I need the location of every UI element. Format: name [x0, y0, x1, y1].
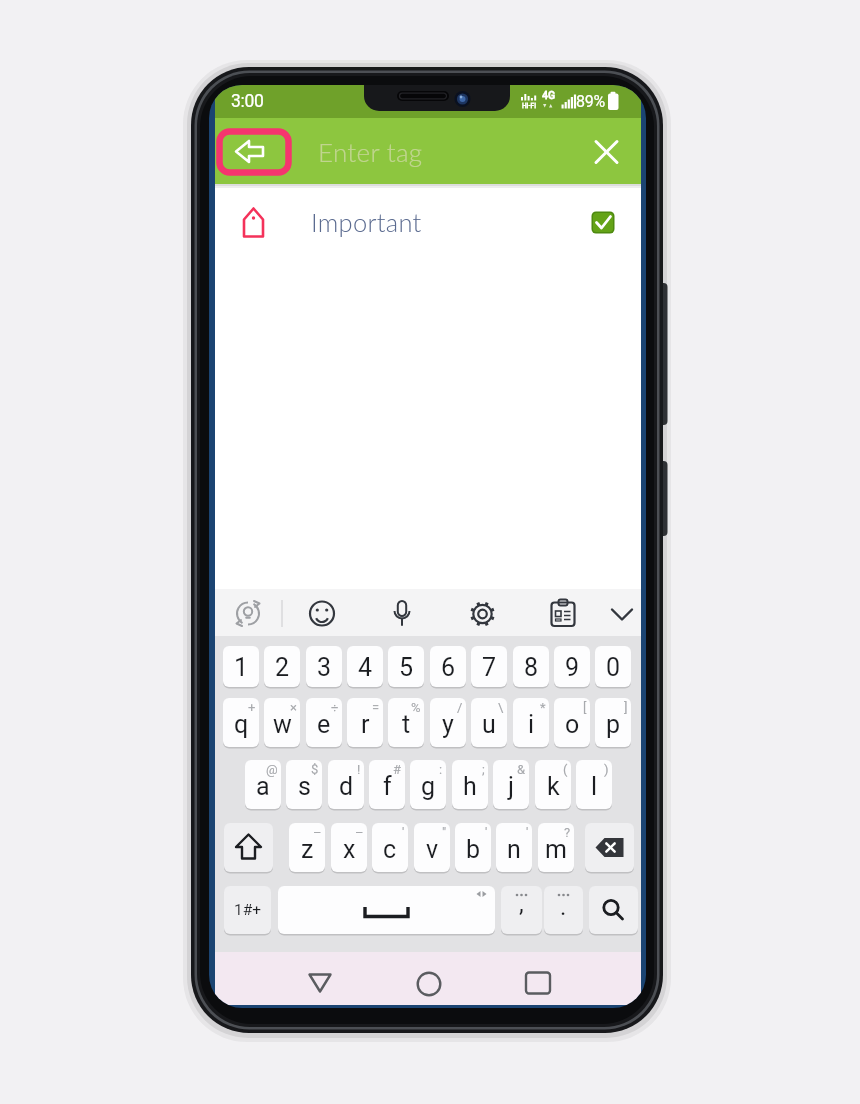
staticText: ×: [290, 700, 297, 715]
button[interactable]: i: [513, 698, 549, 747]
button[interactable]: y: [430, 698, 466, 747]
button[interactable]: c: [372, 823, 408, 872]
button[interactable]: r: [347, 698, 383, 747]
staticText: y: [442, 710, 454, 739]
button[interactable]: [219, 131, 289, 173]
button[interactable]: ,: [501, 886, 542, 934]
button[interactable]: [224, 823, 273, 872]
button[interactable]: g: [410, 760, 446, 809]
staticText: d: [339, 772, 354, 801]
staticText: –: [355, 825, 364, 840]
button[interactable]: 7: [471, 646, 507, 687]
button[interactable]: 5: [388, 646, 424, 687]
staticText: i: [528, 710, 535, 739]
button[interactable]: [382, 594, 422, 634]
button[interactable]: o: [554, 698, 590, 747]
staticText: b: [466, 835, 481, 864]
button[interactable]: x: [331, 823, 367, 872]
staticText: HI-FI: [522, 102, 536, 110]
staticText: m: [545, 835, 567, 864]
staticText: q: [234, 710, 249, 739]
button[interactable]: 1#+: [224, 886, 271, 934]
button[interactable]: [290, 958, 350, 1004]
staticText: #: [393, 762, 402, 777]
button[interactable]: [585, 823, 634, 872]
button[interactable]: e: [306, 698, 342, 747]
button[interactable]: d: [328, 760, 364, 809]
staticText: =: [372, 700, 380, 715]
staticText: 4G: [542, 89, 556, 101]
button[interactable]: p: [595, 698, 631, 747]
button[interactable]: m: [538, 823, 574, 872]
staticText: [: [583, 700, 587, 715]
staticText: f: [383, 772, 392, 801]
staticText: ;: [482, 762, 485, 777]
staticText: n: [507, 835, 521, 864]
button[interactable]: 4: [347, 646, 383, 687]
button[interactable]: w: [264, 698, 300, 747]
button[interactable]: [462, 594, 502, 634]
staticText: j: [508, 772, 514, 801]
button[interactable]: 3: [306, 646, 342, 687]
button[interactable]: 6: [430, 646, 466, 687]
staticText: c: [383, 835, 397, 864]
staticText: ': [526, 825, 529, 840]
button[interactable]: b: [455, 823, 491, 872]
button[interactable]: 9: [554, 646, 590, 687]
button[interactable]: j: [493, 760, 529, 809]
button[interactable]: [508, 958, 568, 1004]
button[interactable]: a: [245, 760, 281, 809]
staticText: (: [563, 762, 568, 777]
staticText: 7: [482, 653, 497, 682]
staticText: \: [498, 700, 504, 715]
button[interactable]: l: [576, 760, 612, 809]
button[interactable]: [542, 594, 582, 634]
staticText: h: [463, 772, 477, 801]
staticText: r: [361, 710, 370, 739]
staticText: ?: [564, 825, 571, 840]
button[interactable]: f: [369, 760, 405, 809]
staticText: $: [311, 762, 319, 777]
staticText: ,: [519, 890, 524, 918]
button[interactable]: n: [496, 823, 532, 872]
staticText: 1: [234, 653, 249, 682]
button[interactable]: [589, 886, 638, 934]
staticText: *: [540, 700, 546, 715]
staticText: 9: [565, 653, 580, 682]
button[interactable]: [302, 594, 342, 634]
button[interactable]: k: [535, 760, 571, 809]
staticText: ]: [624, 700, 628, 715]
button[interactable]: q: [223, 698, 259, 747]
button[interactable]: [602, 594, 642, 634]
staticText: /: [457, 700, 463, 715]
staticText: e: [317, 710, 331, 739]
button[interactable]: s: [286, 760, 322, 809]
staticText: 4: [358, 653, 373, 682]
staticText: t: [402, 710, 411, 739]
button[interactable]: h: [452, 760, 488, 809]
button[interactable]: 1: [223, 646, 259, 687]
button[interactable]: z: [289, 823, 325, 872]
staticText: l: [591, 772, 598, 801]
button[interactable]: [588, 133, 626, 171]
button[interactable]: v: [414, 823, 450, 872]
button[interactable]: Enter tag: [318, 131, 518, 172]
button[interactable]: [215, 196, 641, 248]
button[interactable]: .: [544, 886, 583, 934]
staticText: o: [565, 710, 580, 739]
staticText: 3:00: [231, 91, 264, 111]
button[interactable]: u: [471, 698, 507, 747]
staticText: ": [442, 825, 447, 840]
button[interactable]: 2: [264, 646, 300, 687]
button[interactable]: [228, 594, 268, 634]
button[interactable]: 8: [513, 646, 549, 687]
button[interactable]: [278, 886, 495, 934]
staticText: Enter tag: [318, 136, 423, 167]
staticText: &: [517, 762, 526, 777]
staticText: w: [273, 710, 292, 739]
button[interactable]: t: [388, 698, 424, 747]
button[interactable]: 0: [595, 646, 631, 687]
button[interactable]: [399, 958, 459, 1004]
staticText: !: [357, 762, 361, 777]
staticText: ': [402, 825, 405, 840]
